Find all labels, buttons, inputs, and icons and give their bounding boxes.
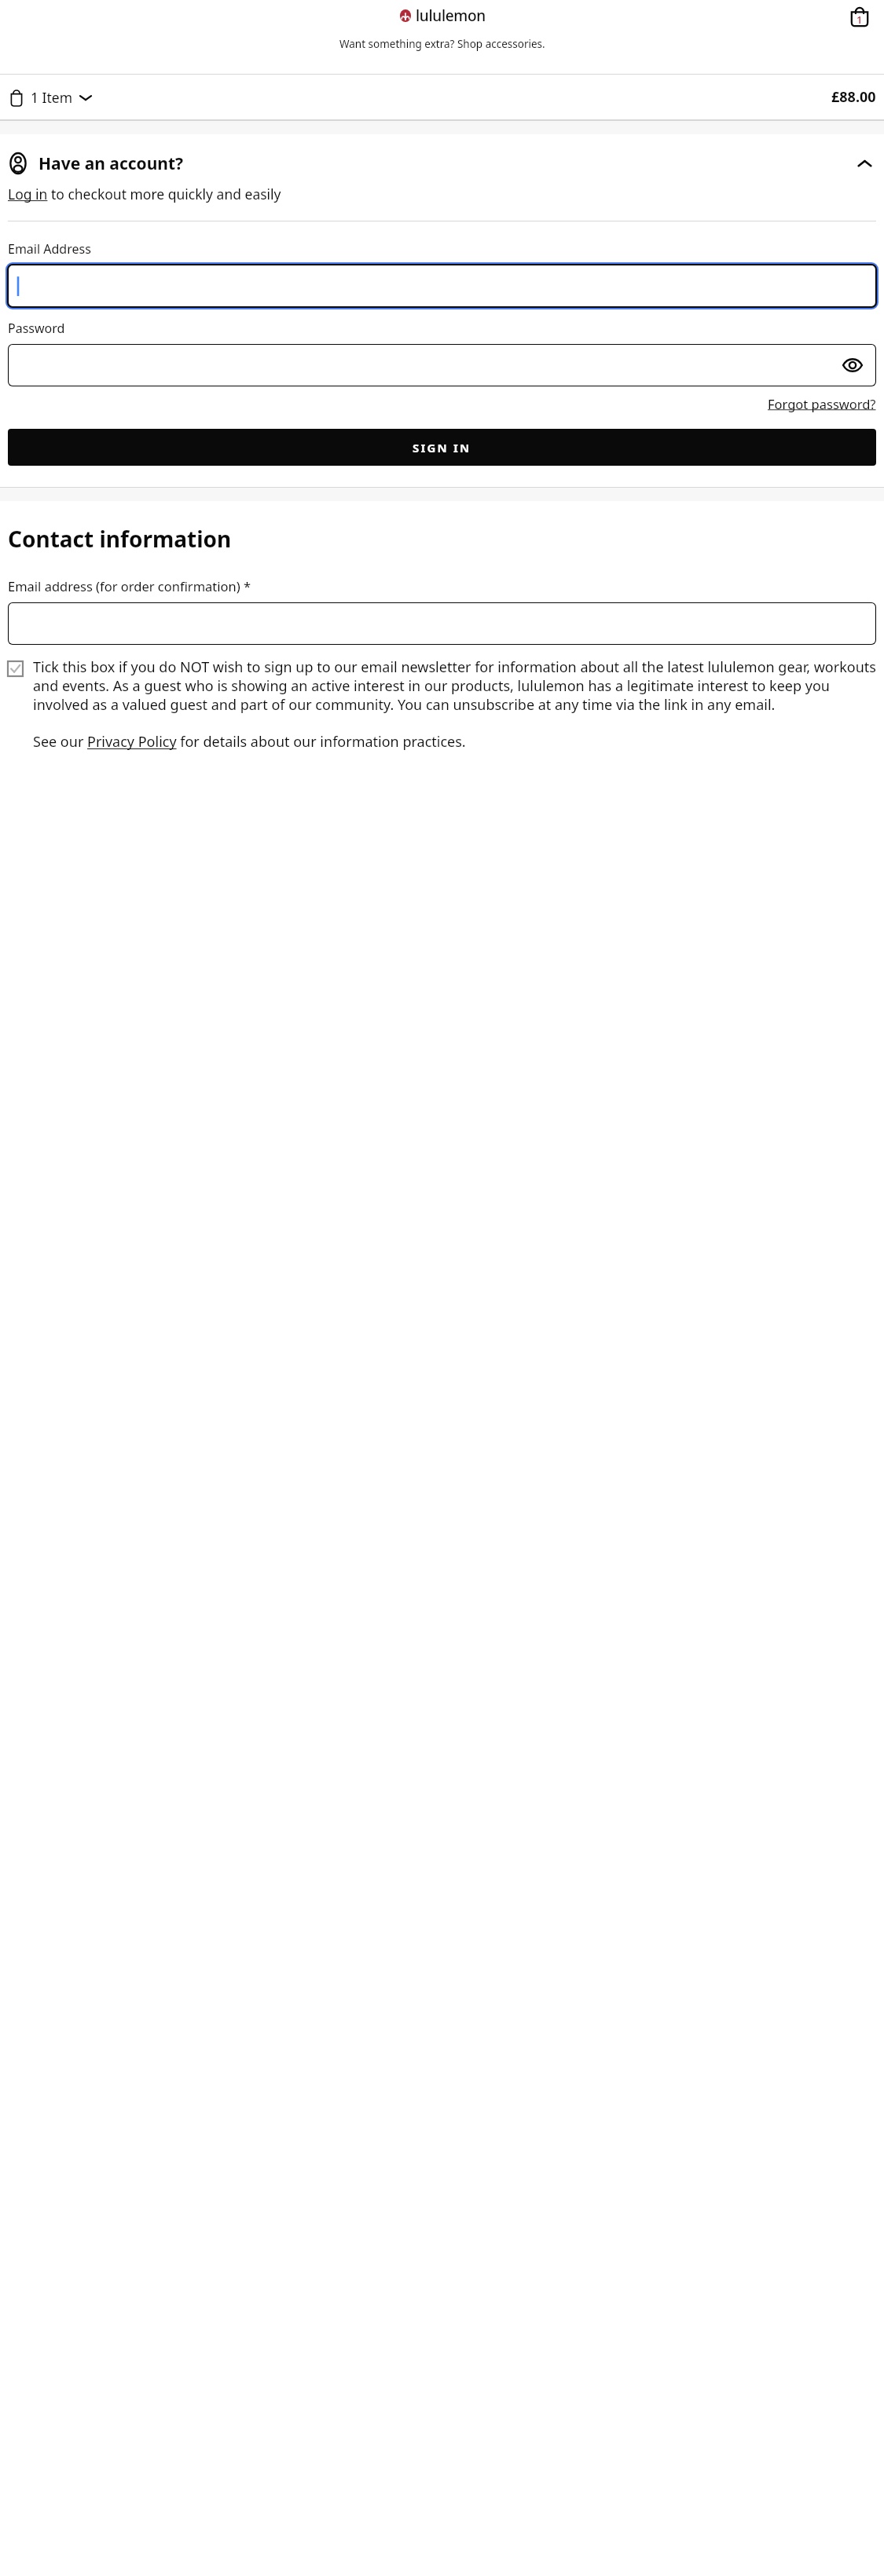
staticText: Email address (for order confirmation) * [8,577,251,595]
staticText: lululemon [416,5,486,26]
button[interactable]: Log in to checkout more quickly and easi… [8,185,281,203]
button[interactable]: Shopping bag, 1 item [846,3,873,30]
staticText: 1 Item [31,88,73,107]
button[interactable]: Show password [838,351,867,379]
staticText: Have an account? [39,152,184,175]
button[interactable]: See our Privacy Policy for details about… [33,732,466,752]
button[interactable]: 1 Item [0,75,884,119]
staticText: SIGN IN [413,440,471,456]
other: Collapse [853,152,876,175]
button[interactable]: SIGN IN [8,429,876,466]
staticText: 1 [856,13,863,27]
button[interactable]: Forgot password? [768,395,876,412]
button[interactable] [8,602,876,645]
staticText: Email Address [8,240,91,258]
staticText: Tick this box if you do NOT wish to sign… [33,657,876,714]
button[interactable]: Show password [8,344,876,386]
button[interactable] [8,265,876,307]
staticText: Contact information [8,524,232,554]
staticText: £88.00 [831,87,876,107]
button[interactable]: Have an account? [8,152,876,175]
staticText: Password [8,320,65,337]
button[interactable]: Tick this box if you do NOT wish to sign… [8,657,876,714]
staticText: Want something extra? Shop accessories. [339,37,545,51]
